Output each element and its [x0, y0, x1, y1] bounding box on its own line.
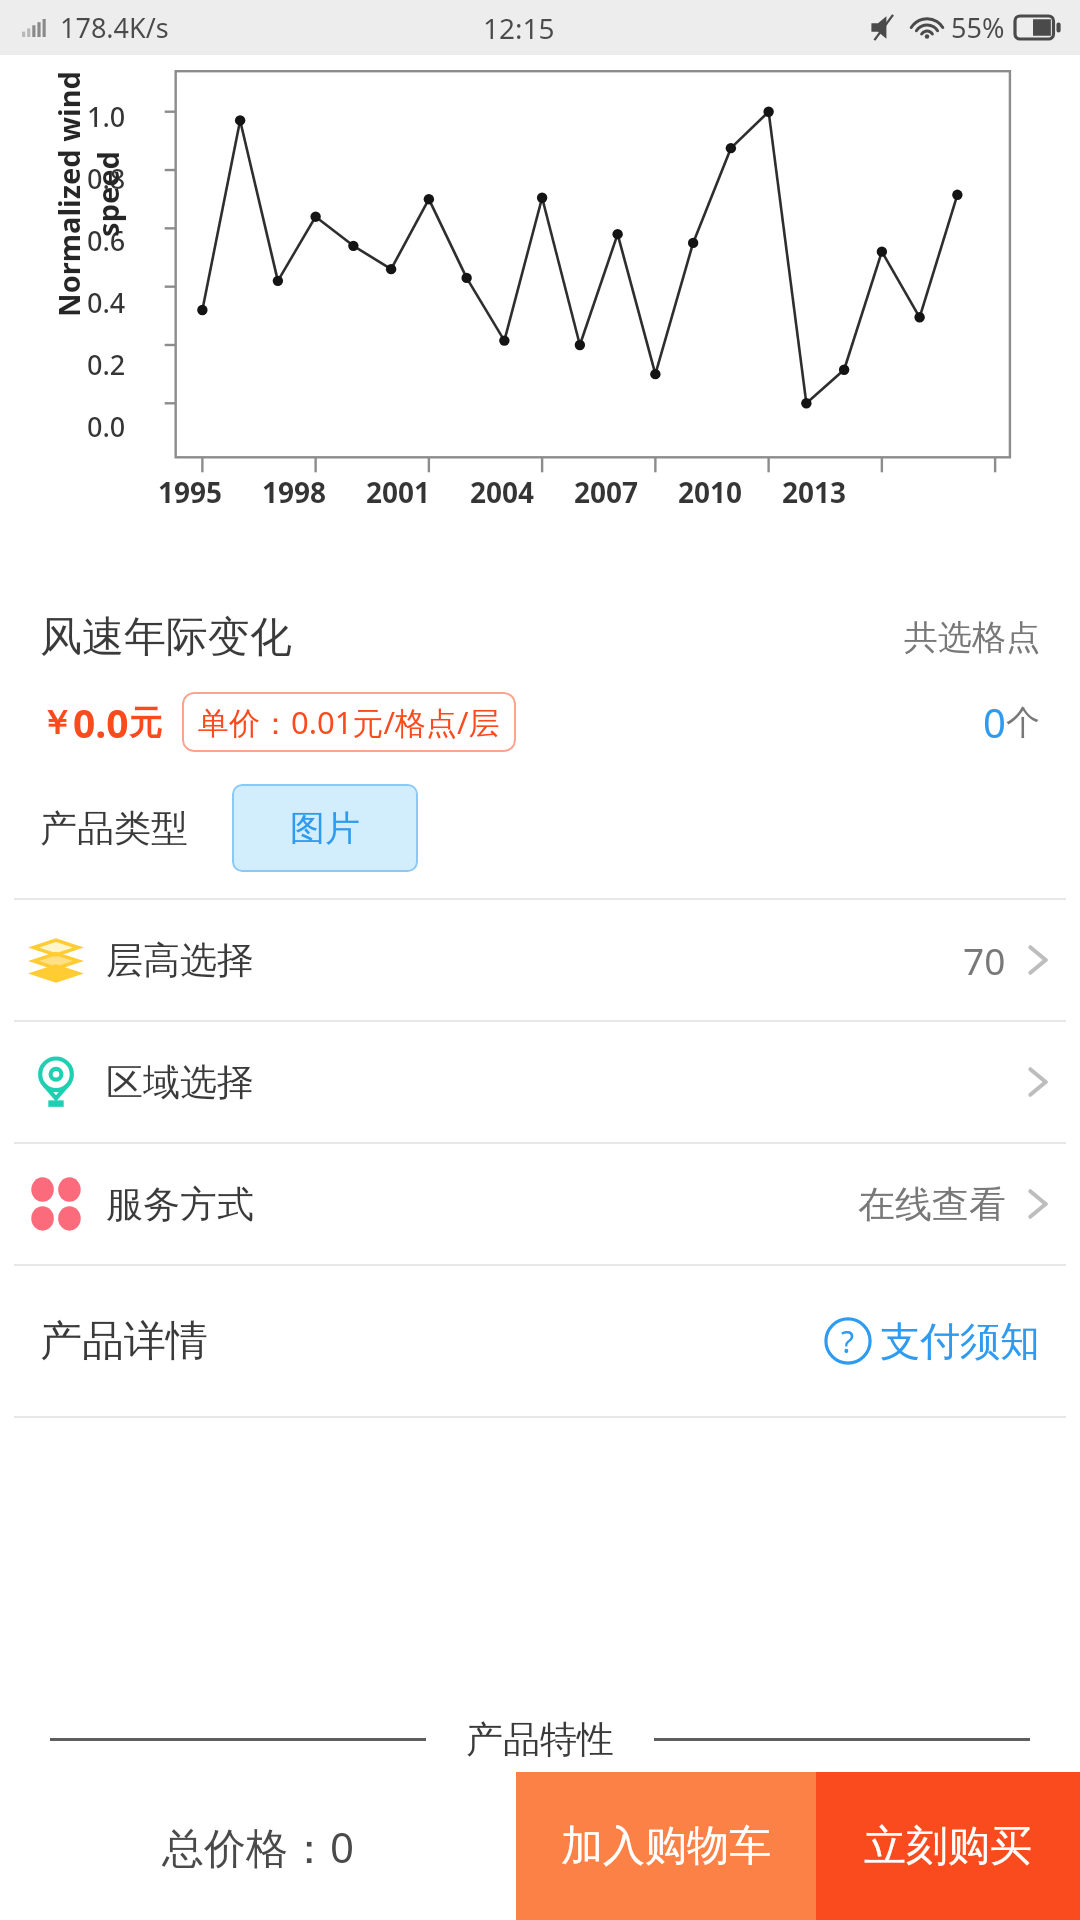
- staticText: 0.6: [87, 222, 126, 259]
- staticText: 区域选择: [106, 1059, 254, 1106]
- other: Region: [30, 1056, 82, 1108]
- staticText: 单价：0.01元/格点/层: [198, 701, 500, 743]
- staticText: 服务方式: [106, 1181, 254, 1228]
- staticText: 0.8: [87, 160, 126, 197]
- staticText: 70: [963, 935, 1006, 985]
- staticText: 1998: [262, 473, 327, 511]
- other: Service mode: [30, 1178, 82, 1230]
- staticText: Normalized wind speed: [49, 54, 127, 334]
- staticText: 支付须知: [880, 1316, 1040, 1366]
- button[interactable]: Service mode: [0, 1144, 1080, 1264]
- staticText: 1995: [158, 473, 223, 511]
- staticText: 元: [129, 702, 162, 744]
- staticText: 2013: [782, 473, 847, 511]
- staticText: 0.4: [87, 284, 126, 321]
- staticText: 0: [983, 695, 1006, 749]
- other: Layer height: [30, 934, 82, 986]
- staticText: 2001: [366, 473, 431, 511]
- staticText: 产品详情: [40, 1315, 208, 1368]
- staticText: 0.0: [73, 696, 129, 749]
- staticText: 总价格：0: [162, 1818, 355, 1875]
- button[interactable]: 加入购物车: [516, 1772, 816, 1920]
- staticText: 共选格点: [904, 616, 1040, 659]
- staticText: 0.2: [87, 346, 126, 383]
- staticText: 0.0: [87, 408, 126, 445]
- staticText: 2010: [678, 473, 743, 511]
- button[interactable]: Layer height: [0, 900, 1080, 1020]
- staticText: 2007: [574, 473, 639, 511]
- button[interactable]: Region: [0, 1022, 1080, 1142]
- button[interactable]: 立刻购买: [816, 1772, 1080, 1920]
- staticText: 在线查看: [858, 1181, 1006, 1228]
- staticText: 产品特性: [466, 1716, 614, 1763]
- staticText: 层高选择: [106, 937, 254, 984]
- button[interactable]: ?: [824, 1316, 1040, 1366]
- staticText: 2004: [470, 473, 535, 511]
- staticText: ?: [841, 1321, 855, 1362]
- staticText: 立刻购买: [864, 1820, 1032, 1873]
- button[interactable]: 图片: [232, 784, 418, 872]
- staticText: ￥: [40, 702, 73, 744]
- staticText: 图片: [290, 806, 360, 850]
- staticText: 产品类型: [40, 805, 188, 852]
- staticText: 个: [1006, 701, 1040, 744]
- staticText: 1.0: [87, 98, 126, 135]
- staticText: 加入购物车: [561, 1820, 771, 1873]
- staticText: 178.4K/s: [60, 9, 169, 46]
- staticText: 风速年际变化: [40, 611, 292, 664]
- staticText: 12:15: [483, 9, 555, 47]
- staticText: 55%: [951, 9, 1005, 46]
- button[interactable]: 总价格：0: [0, 1772, 516, 1920]
